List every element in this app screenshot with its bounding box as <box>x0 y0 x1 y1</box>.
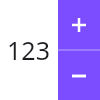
button[interactable]: Decrease <box>58 51 100 100</box>
staticText: 123 <box>7 33 50 67</box>
button[interactable]: 123 <box>0 0 58 100</box>
button[interactable]: Increase <box>58 0 100 49</box>
